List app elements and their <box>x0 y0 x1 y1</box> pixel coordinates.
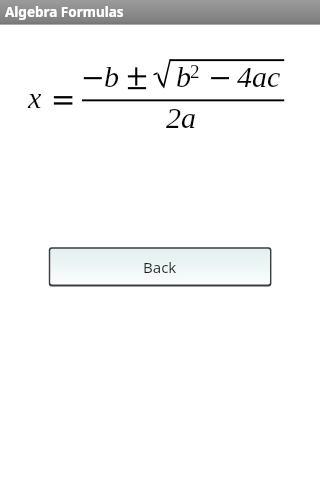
staticText: 2 <box>190 61 200 82</box>
staticText: b <box>176 60 191 93</box>
staticText: Back <box>143 257 177 277</box>
staticText: Algebra Formulas <box>5 3 124 21</box>
staticText: b <box>104 60 119 93</box>
button[interactable]: Algebra Formulas <box>0 0 320 24</box>
staticText: 4ac <box>237 60 281 93</box>
button[interactable]: Back <box>48 247 272 287</box>
staticText: x <box>28 81 42 114</box>
staticText: 2a <box>166 101 196 134</box>
